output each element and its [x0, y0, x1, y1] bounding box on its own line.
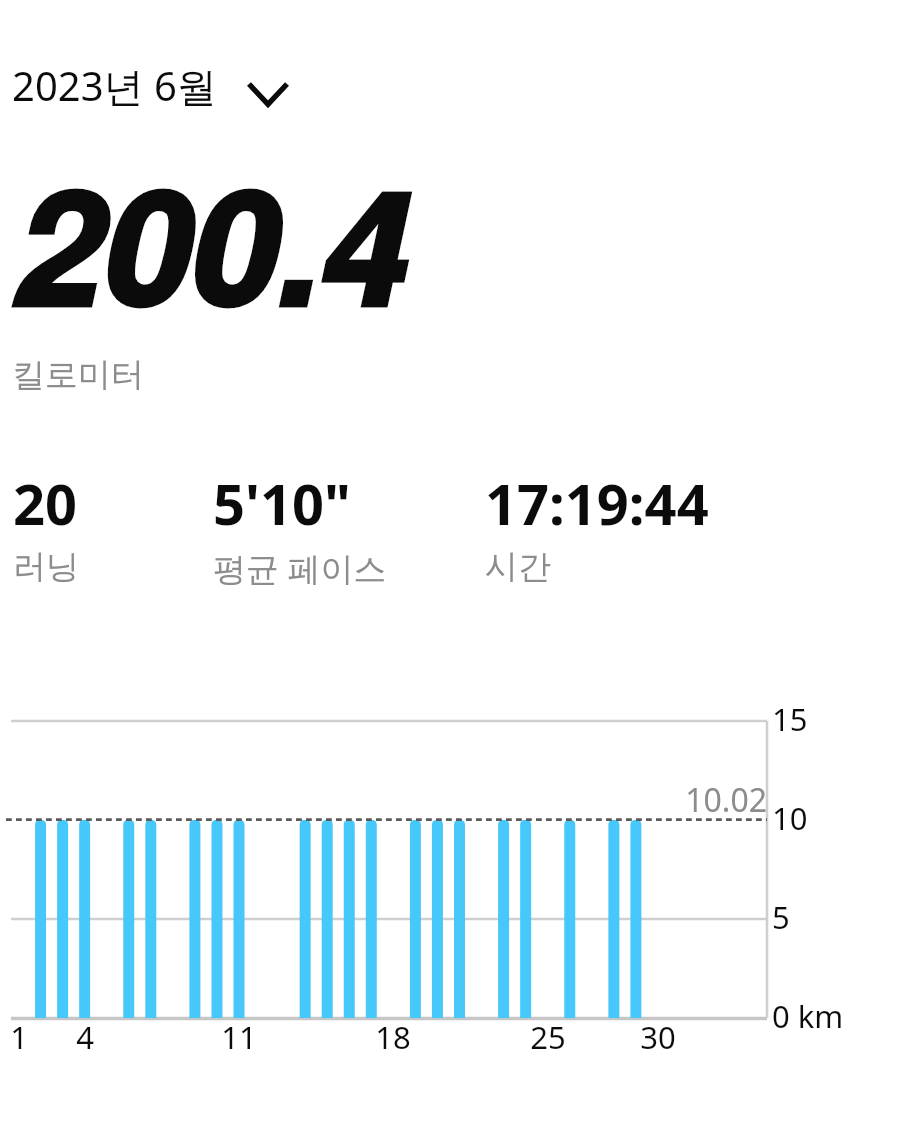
staticText: 15 — [772, 698, 808, 740]
staticText: 10.02 — [587, 778, 767, 822]
staticText: 5 — [772, 896, 790, 938]
staticText: 11 — [199, 1016, 279, 1058]
staticText: 25 — [508, 1016, 588, 1058]
staticText: 30 — [618, 1016, 698, 1058]
button[interactable]: 17:19:44 — [485, 465, 785, 588]
button[interactable]: 6월 일별 거리 그래프 — [0, 687, 900, 1068]
staticText: 18 — [353, 1016, 433, 1058]
staticText: 킬로미터 — [12, 354, 144, 396]
button[interactable]: 20 — [13, 465, 213, 588]
staticText: 0 km — [772, 995, 844, 1037]
staticText: 5'10" — [213, 465, 351, 541]
staticText: 20 — [13, 465, 78, 541]
staticText: 10 — [772, 797, 808, 839]
staticText: 러닝 — [13, 546, 79, 588]
staticText: 2023년 6월 — [12, 58, 217, 113]
staticText: 4 — [45, 1016, 125, 1058]
staticText: 시간 — [485, 546, 551, 588]
staticText: 17:19:44 — [485, 465, 709, 541]
staticText: 200.4 — [16, 129, 409, 354]
button[interactable]: 5'10" — [213, 465, 485, 591]
button[interactable]: 2023년 6월, 월 선택 — [12, 58, 290, 113]
staticText: 1 — [0, 1016, 59, 1058]
staticText: 평균 페이스 — [213, 546, 387, 591]
